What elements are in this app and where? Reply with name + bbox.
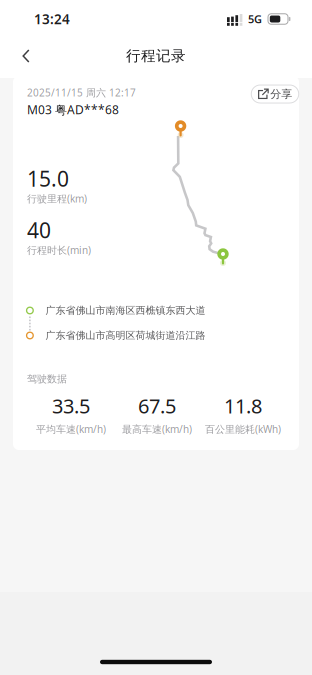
- staticText: 百公里能耗(kWh): [205, 422, 281, 436]
- staticText: 广东省佛山市南海区西樵镇东西大道: [46, 304, 206, 317]
- staticText: 15.0: [27, 164, 69, 193]
- staticText: 11.8: [224, 392, 262, 419]
- staticText: 行驶里程(km): [27, 192, 87, 205]
- button[interactable]: 分享: [251, 85, 299, 103]
- staticText: 67.5: [138, 392, 176, 419]
- staticText: 广东省佛山市高明区荷城街道沿江路: [46, 329, 206, 342]
- button[interactable]: Back: [8, 38, 44, 74]
- staticText: 5G: [248, 11, 262, 26]
- staticText: 行程时长(min): [27, 243, 91, 257]
- staticText: M03 粤AD***68: [27, 101, 119, 118]
- staticText: 40: [27, 216, 51, 244]
- staticText: 驾驶数据: [27, 373, 67, 385]
- staticText: 33.5: [52, 392, 90, 419]
- staticText: 平均车速(km/h): [36, 422, 106, 436]
- staticText: 最高车速(km/h): [122, 422, 192, 436]
- staticText: 行程记录: [126, 47, 186, 65]
- staticText: 13:24: [34, 10, 70, 28]
- staticText: 分享: [270, 87, 292, 101]
- staticText: 2025/11/15 周六 12:17: [27, 86, 136, 99]
